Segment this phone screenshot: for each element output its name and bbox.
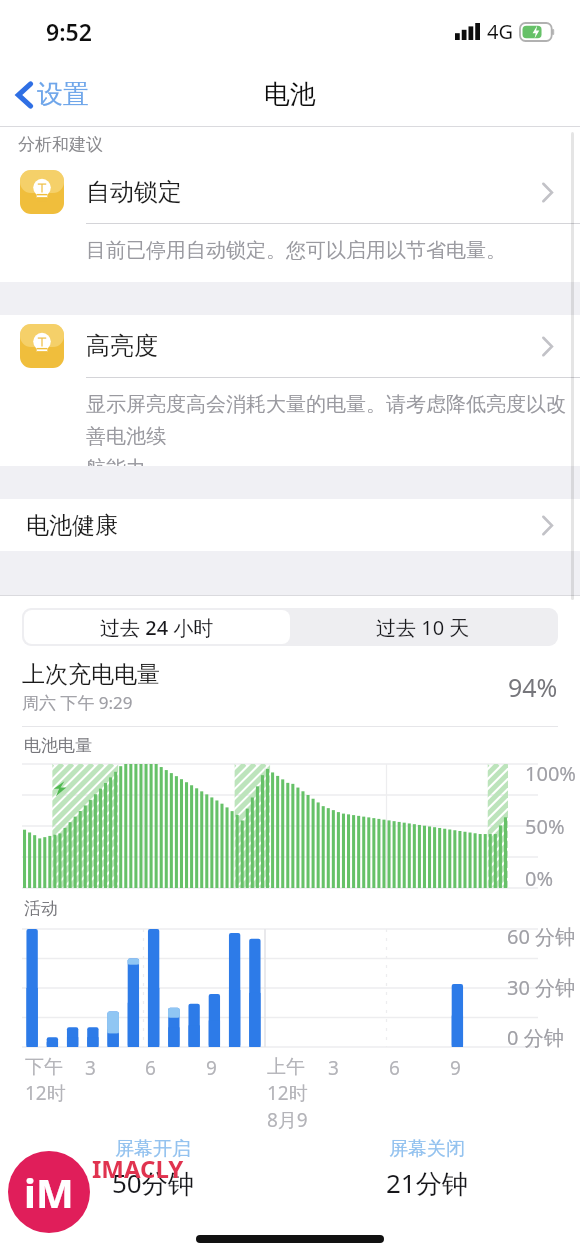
staticText: 3 [85,1055,96,1081]
button[interactable]: Suggestion [0,161,580,223]
staticText: 6 [389,1055,400,1081]
button[interactable]: 电池健康 [0,499,580,551]
staticText: 分析和建议 [18,134,103,155]
staticText: 设置 [37,78,89,111]
button[interactable]: Suggestion [0,315,580,377]
staticText: 9 [206,1055,217,1081]
staticText: 自动锁定 [86,177,182,207]
staticText: 9:52 [46,16,92,47]
staticText: 30 分钟 [507,974,576,1001]
staticText: 上午 12时 8月9日 [267,1055,325,1131]
staticText: 目前已停用自动锁定。您可以启用以节省电量。 [86,238,506,263]
staticText: 21分钟 [386,1165,468,1201]
staticText: 6 [145,1055,156,1081]
staticText: 屏幕开启 [115,1137,191,1161]
staticText: 屏幕关闭 [389,1137,465,1161]
other: Suggestion [20,324,64,368]
staticText: 电池健康 [26,511,118,540]
staticText: 9 [450,1055,461,1081]
other: Suggestion [20,170,64,214]
staticText: 下午 12时 [25,1055,66,1106]
staticText: 50% [525,813,565,840]
staticText: 50分钟 [112,1165,194,1201]
staticText: 显示屏亮度高会消耗大量的电量。请考虑降低亮度以改善电池续 航能力。 [86,392,572,466]
staticText: 过去 24 小时 [100,614,214,641]
staticText: 0% [525,865,554,892]
staticText: 0 分钟 [507,1024,564,1051]
staticText: 周六 下午 9:29 [22,691,133,714]
staticText: iM [24,1165,74,1219]
button[interactable]: 设置 [0,70,103,119]
staticText: 94% [508,670,558,704]
staticText: 活动 [24,898,58,919]
staticText: 过去 10 天 [376,614,470,641]
staticText: 电池电量 [24,735,92,756]
staticText: 电池 [264,78,316,111]
button[interactable]: 过去 10 天 [290,610,556,644]
staticText: 高亮度 [86,331,158,361]
staticText: IMACLY [92,1152,184,1185]
staticText: 3 [328,1055,339,1081]
staticText: 100% [525,760,576,787]
staticText: 60 分钟 [507,923,576,950]
staticText: 上次充电电量 [22,660,160,689]
staticText: 4G [487,18,513,45]
button[interactable]: 过去 24 小时 [24,610,290,644]
